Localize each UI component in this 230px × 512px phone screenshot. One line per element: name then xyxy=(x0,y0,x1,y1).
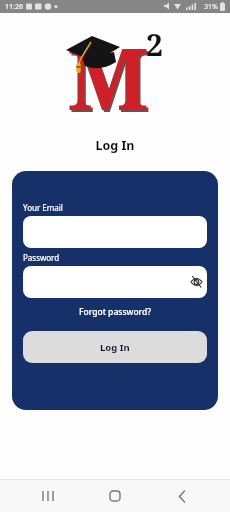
staticText: Log In xyxy=(0,137,230,154)
staticText: Log In xyxy=(100,341,130,354)
button[interactable]: Log In xyxy=(23,331,207,363)
button[interactable] xyxy=(23,266,207,298)
button[interactable] xyxy=(167,481,197,511)
button[interactable] xyxy=(190,276,203,288)
staticText: 2 xyxy=(146,24,163,65)
staticText: 31% xyxy=(204,2,218,12)
button[interactable] xyxy=(100,481,130,511)
staticText: M xyxy=(67,18,149,135)
staticText: M xyxy=(69,20,151,137)
button[interactable] xyxy=(23,216,207,248)
staticText: 11:26 xyxy=(5,2,23,12)
staticText: Your Email xyxy=(23,202,63,213)
staticText: Password xyxy=(23,252,60,263)
button[interactable]: Forgot password? xyxy=(79,306,152,318)
button[interactable] xyxy=(33,481,63,511)
